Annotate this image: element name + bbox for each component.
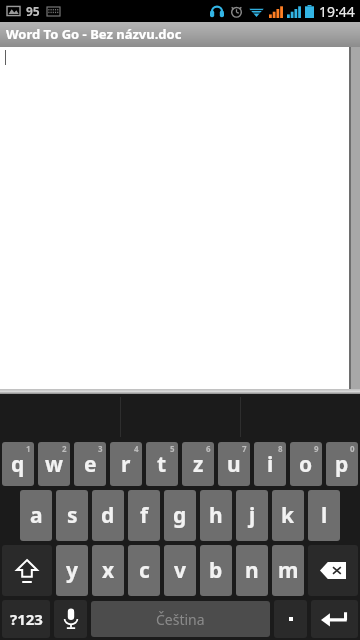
button[interactable]: Delete bbox=[308, 545, 358, 596]
button[interactable]: n bbox=[236, 545, 268, 596]
staticText: Word To Go - Bez názvu.doc bbox=[6, 25, 182, 43]
button[interactable]: e bbox=[74, 442, 106, 486]
staticText: 19:44 bbox=[319, 2, 355, 21]
staticText: i bbox=[267, 450, 274, 479]
staticText: w bbox=[45, 450, 63, 479]
button[interactable]: Čeština bbox=[91, 601, 270, 637]
staticText: y bbox=[66, 556, 78, 585]
staticText: b bbox=[209, 556, 223, 585]
button[interactable]: i bbox=[254, 442, 286, 486]
button[interactable]: z bbox=[182, 442, 214, 486]
button[interactable]: w bbox=[38, 442, 70, 486]
staticText: n bbox=[245, 556, 259, 585]
button[interactable]: x bbox=[92, 545, 124, 596]
staticText: 9 bbox=[314, 443, 319, 454]
staticText: e bbox=[84, 450, 97, 479]
button[interactable]: Enter bbox=[311, 600, 358, 638]
staticText: 4 bbox=[134, 443, 139, 454]
staticText: s bbox=[67, 501, 78, 530]
button[interactable]: v bbox=[164, 545, 196, 596]
staticText: t bbox=[157, 450, 167, 479]
staticText: l bbox=[321, 501, 328, 530]
button[interactable]: d bbox=[92, 490, 124, 541]
staticText: o bbox=[299, 450, 313, 479]
button[interactable]: a bbox=[20, 490, 52, 541]
button[interactable]: f bbox=[128, 490, 160, 541]
button[interactable]: m bbox=[272, 545, 304, 596]
button[interactable]: Voice input bbox=[54, 600, 87, 638]
staticText: 6 bbox=[206, 443, 211, 454]
button[interactable]: Period bbox=[274, 600, 307, 638]
button[interactable]: y bbox=[56, 545, 88, 596]
staticText: h bbox=[209, 501, 223, 530]
staticText: 1 bbox=[26, 443, 31, 454]
staticText: v bbox=[174, 556, 186, 585]
button[interactable]: ?123 bbox=[2, 600, 50, 638]
staticText: g bbox=[173, 501, 187, 530]
staticText: 7 bbox=[242, 443, 247, 454]
staticText: q bbox=[11, 450, 25, 479]
button[interactable]: t bbox=[146, 442, 178, 486]
button[interactable]: Shift bbox=[2, 545, 52, 596]
staticText: 2 bbox=[62, 443, 67, 454]
button[interactable]: k bbox=[272, 490, 304, 541]
staticText: m bbox=[278, 556, 299, 585]
staticText: c bbox=[139, 556, 150, 585]
staticText: r bbox=[121, 450, 131, 479]
staticText: x bbox=[102, 556, 115, 585]
staticText: u bbox=[227, 450, 241, 479]
button[interactable]: u bbox=[218, 442, 250, 486]
staticText: ?123 bbox=[10, 609, 43, 629]
staticText: k bbox=[281, 501, 295, 530]
button[interactable]: Word To Go - Bez názvu.doc bbox=[0, 22, 360, 47]
staticText: Čeština bbox=[156, 610, 205, 629]
staticText: p bbox=[335, 450, 349, 479]
button[interactable]: q bbox=[2, 442, 34, 486]
button[interactable]: l bbox=[308, 490, 340, 541]
button[interactable]: b bbox=[200, 545, 232, 596]
staticText: 0 bbox=[350, 443, 355, 454]
staticText: 5 bbox=[170, 443, 175, 454]
button[interactable]: h bbox=[200, 490, 232, 541]
button[interactable]: j bbox=[236, 490, 268, 541]
button[interactable]: r bbox=[110, 442, 142, 486]
staticText: 3 bbox=[98, 443, 103, 454]
staticText: 95 bbox=[26, 3, 40, 19]
staticText: j bbox=[249, 501, 256, 530]
staticText: a bbox=[30, 501, 43, 530]
staticText: f bbox=[140, 501, 149, 530]
staticText: z bbox=[193, 450, 204, 479]
staticText: d bbox=[101, 501, 115, 530]
button[interactable]: g bbox=[164, 490, 196, 541]
button[interactable]: c bbox=[128, 545, 160, 596]
staticText: 8 bbox=[278, 443, 283, 454]
button[interactable]: p bbox=[326, 442, 358, 486]
button[interactable]: o bbox=[290, 442, 322, 486]
button[interactable]: s bbox=[56, 490, 88, 541]
